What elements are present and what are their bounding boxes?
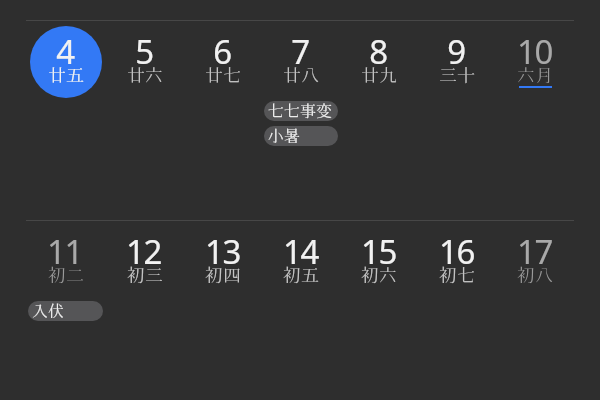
staticText: 7 [291,29,309,74]
button[interactable]: 七七事变 [264,101,338,121]
staticText: 4 [56,29,74,74]
staticText: 初四 [205,264,241,286]
button[interactable]: 入伏 [28,301,103,321]
staticText: 初三 [127,264,163,286]
button[interactable]: 8 [340,21,418,101]
staticText: 七七事变 [268,101,333,121]
staticText: 13 [205,229,240,274]
staticText: 廿九 [361,64,397,86]
button[interactable]: 小暑 [264,126,338,146]
button[interactable]: 7 [262,21,340,151]
button[interactable]: 6 [184,21,262,101]
button[interactable]: 9 [418,21,496,101]
button[interactable]: 15 [340,221,418,301]
staticText: 12 [126,229,161,274]
staticText: 15 [361,229,396,274]
button[interactable]: 12 [105,221,184,301]
button[interactable]: 11 [26,221,105,326]
button[interactable]: 13 [184,221,262,301]
staticText: 5 [135,29,153,74]
staticText: 初六 [361,264,397,286]
staticText: 廿七 [205,64,241,86]
staticText: 初五 [283,264,319,286]
staticText: 初八 [517,264,553,286]
staticText: 14 [283,229,318,274]
staticText: 初七 [439,264,475,286]
staticText: 17 [517,229,552,274]
button[interactable]: 17 [496,221,574,301]
button[interactable]: 10 [496,21,574,101]
staticText: 三十 [439,64,475,86]
staticText: 廿六 [127,64,163,86]
staticText: 16 [439,229,474,274]
staticText: 廿八 [283,64,319,86]
button[interactable]: 16 [418,221,496,301]
button[interactable]: 4 [26,21,105,101]
staticText: 8 [369,29,387,74]
staticText: 入伏 [32,301,65,321]
staticText: 六月 [517,64,553,86]
staticText: 初二 [48,264,84,286]
button[interactable]: 5 [105,21,184,101]
staticText: 10 [517,29,552,74]
staticText: 9 [447,29,465,74]
button[interactable]: 14 [262,221,340,301]
staticText: 小暑 [268,126,301,146]
staticText: 11 [47,229,82,274]
staticText: 廿五 [48,64,84,86]
staticText: 6 [213,29,231,74]
